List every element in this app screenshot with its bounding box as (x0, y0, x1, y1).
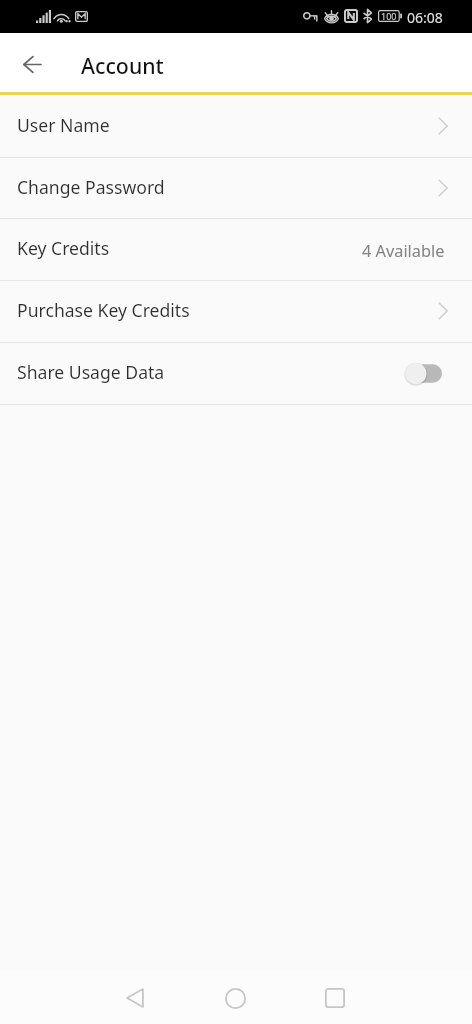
button[interactable]: Back (103, 978, 167, 1018)
staticText: Change Password (17, 175, 165, 199)
staticText: 4 Available (362, 240, 445, 262)
button[interactable]: Recents (303, 978, 367, 1018)
staticText: User Name (17, 113, 110, 137)
button[interactable]: Share Usage Data (405, 361, 442, 386)
button[interactable]: Key Credits (0, 219, 472, 281)
staticText: 06:08 (407, 8, 443, 27)
button[interactable]: Purchase Key Credits (0, 281, 472, 343)
button[interactable]: User Name (0, 96, 472, 158)
staticText: Share Usage Data (17, 360, 165, 384)
button[interactable]: Change Password (0, 158, 472, 220)
staticText: Purchase Key Credits (17, 298, 190, 322)
button[interactable]: Home (203, 978, 267, 1018)
button[interactable]: Back (10, 41, 54, 85)
staticText: Account (81, 51, 164, 80)
button[interactable]: Share Usage Data (0, 343, 472, 405)
staticText: Key Credits (17, 236, 110, 260)
staticText: 100 (381, 10, 397, 22)
